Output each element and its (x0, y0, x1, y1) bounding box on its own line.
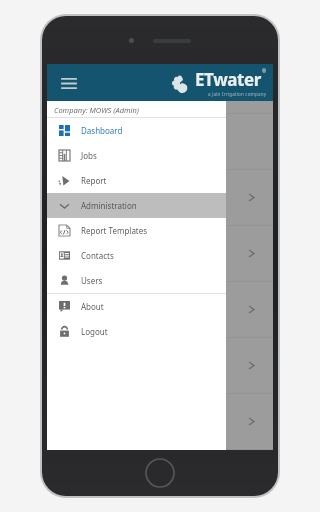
staticText: Company: MOWS (Admin) (54, 105, 140, 115)
button[interactable] (47, 225, 273, 281)
button[interactable]: Users (47, 268, 226, 293)
staticText: Report (81, 175, 107, 186)
staticText: Logout (81, 326, 108, 337)
staticText: ® (262, 68, 267, 75)
button[interactable] (47, 281, 273, 337)
staticText: Users (81, 275, 103, 286)
button[interactable]: Dashboard (47, 118, 226, 143)
staticText: Contacts (81, 250, 114, 261)
button[interactable] (47, 113, 273, 169)
button[interactable]: Jobs (47, 143, 226, 168)
button[interactable] (47, 169, 273, 225)
button[interactable]: Report (47, 168, 226, 193)
staticText: Report Templates (81, 225, 148, 236)
staticText: Dashboard (81, 125, 123, 136)
staticText: ETwater (195, 68, 262, 91)
button[interactable]: Administration (47, 193, 226, 218)
staticText: About (81, 301, 104, 312)
button[interactable]: Contacts (47, 243, 226, 268)
button[interactable] (47, 393, 273, 449)
button[interactable]: About (47, 294, 226, 319)
staticText: Jobs (81, 150, 97, 161)
staticText: Administration (81, 200, 137, 211)
button[interactable] (47, 337, 273, 393)
staticText: a Jain Irrigation company (208, 91, 267, 97)
button[interactable]: Open navigation menu (55, 69, 83, 97)
button[interactable]: Logout (47, 319, 226, 344)
button[interactable]: Report Templates (47, 218, 226, 243)
